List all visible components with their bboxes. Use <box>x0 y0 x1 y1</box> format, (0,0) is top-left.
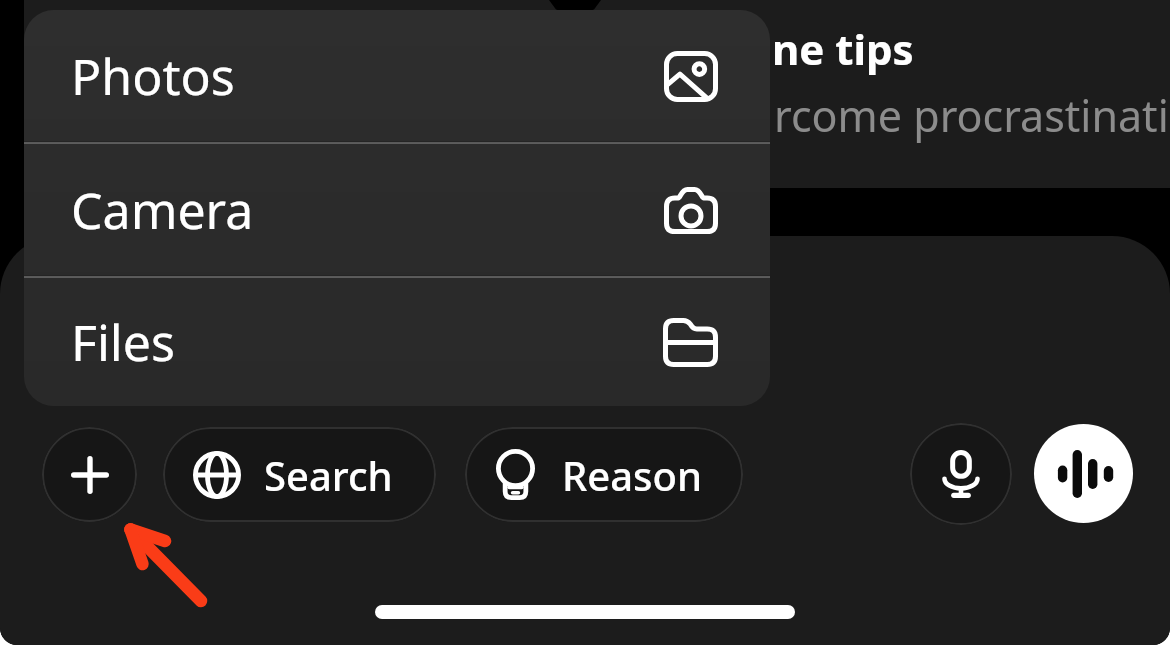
staticText: Files <box>71 308 175 376</box>
staticText: rcome procrastination <box>774 86 1170 145</box>
button[interactable]: Files <box>24 278 770 406</box>
button[interactable]: Voice input <box>910 423 1012 525</box>
staticText: Reason <box>562 448 703 502</box>
staticText: Camera <box>71 176 254 244</box>
button[interactable]: Voice mode <box>1034 424 1133 523</box>
button[interactable]: Add attachment <box>42 427 137 522</box>
staticText: Search <box>264 448 393 502</box>
button[interactable]: Camera <box>24 144 770 276</box>
button[interactable]: Search <box>163 427 436 522</box>
button[interactable]: Photos <box>24 10 770 142</box>
button[interactable]: Reason <box>465 427 743 522</box>
staticText: ne tips <box>772 20 914 77</box>
staticText: Photos <box>71 42 235 110</box>
